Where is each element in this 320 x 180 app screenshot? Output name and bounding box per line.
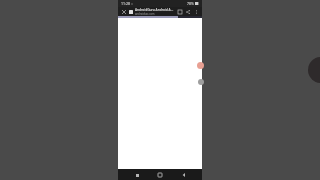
button[interactable]: Close: [120, 8, 128, 16]
staticText: 78%: [187, 1, 194, 6]
button[interactable]: Scroll handle: [198, 79, 204, 85]
staticText: AndroidGuru Android Apps...: [135, 8, 175, 12]
button[interactable]: Reaction: [197, 62, 204, 69]
staticText: androidsoc.com: [135, 12, 155, 16]
button[interactable]: Floating bubble: [308, 57, 320, 83]
button[interactable]: Share: [184, 8, 192, 16]
button[interactable]: Open in app: [176, 8, 184, 16]
staticText: 11:28: [121, 1, 130, 6]
button[interactable]: Back: [179, 170, 189, 180]
button[interactable]: More options: [192, 8, 200, 16]
button[interactable]: Recents: [132, 170, 142, 180]
button[interactable]: Home: [155, 170, 165, 180]
